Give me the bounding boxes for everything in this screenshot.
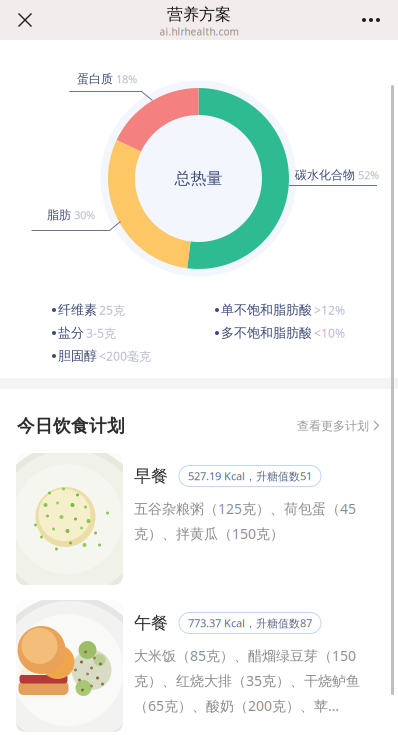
staticText: 25克 [99,302,125,318]
staticText: 527.19 Kcal，升糖值数51 [188,468,312,483]
button[interactable]: Close [5,0,45,40]
button[interactable]: 早餐 [16,453,380,585]
staticText: 30% [74,207,95,222]
staticText: 18% [116,71,137,86]
staticText: 早餐 [134,465,168,487]
staticText: 蛋白质 [77,71,113,86]
staticText: 大米饭（85克）、醋熘绿豆芽（150克）、红烧大排（35克）、干烧鲈鱼（65克）… [134,646,360,715]
staticText: 52% [358,167,379,182]
staticText: 总热量 [174,168,222,189]
staticText: <200毫克 [99,348,151,364]
staticText: >12% [314,302,345,318]
staticText: 今日饮食计划 [17,415,125,437]
staticText: 查看更多计划 [297,418,369,433]
staticText: 单不饱和脂肪酸 [221,302,312,318]
staticText: 3-5克 [86,325,116,341]
staticText: <10% [314,325,345,341]
staticText: 午餐 [134,612,168,634]
staticText: ai.hlrhealth.com [159,25,238,38]
button[interactable]: More options [349,0,393,40]
staticText: 五谷杂粮粥（125克）、荷包蛋（45克）、拌黄瓜（150克） [134,499,356,543]
staticText: 盐分 [58,325,84,341]
button[interactable]: 查看更多计划 [297,411,379,441]
staticText: 773.37 Kcal，升糖值数87 [188,615,312,630]
staticText: 脂肪 [47,207,71,222]
button[interactable]: 午餐 [16,600,380,732]
staticText: 碳水化合物 [295,167,355,182]
staticText: 营养方案 [167,4,231,25]
staticText: 多不饱和脂肪酸 [221,325,312,341]
staticText: 胆固醇 [58,348,97,364]
staticText: 纤维素 [58,302,97,318]
